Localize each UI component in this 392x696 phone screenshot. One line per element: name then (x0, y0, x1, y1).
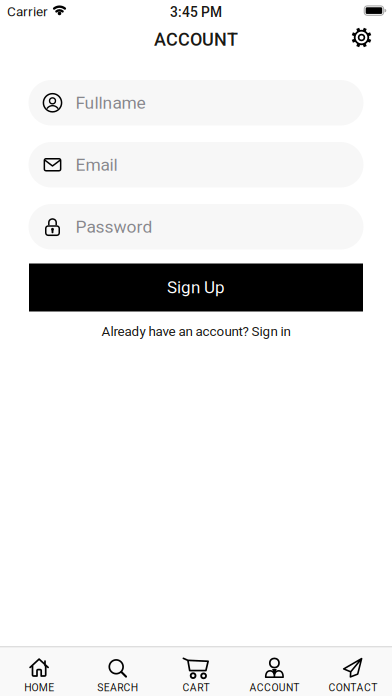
staticText: HOME (24, 682, 54, 694)
staticText: 3:45 PM (170, 4, 222, 20)
staticText: Fullname (75, 93, 145, 113)
staticText: Email (75, 155, 117, 175)
staticText: Carrier (7, 4, 48, 20)
staticText: Password (75, 217, 152, 237)
staticText: Already have an account? Sign in (101, 323, 290, 339)
staticText: Sign Up (167, 277, 225, 297)
staticText: SEARCH (97, 682, 138, 694)
staticText: CART (183, 682, 209, 694)
staticText: CONTACT (328, 682, 377, 694)
staticText: ACCOUNT (249, 682, 299, 694)
staticText: ACCOUNT (154, 29, 238, 50)
